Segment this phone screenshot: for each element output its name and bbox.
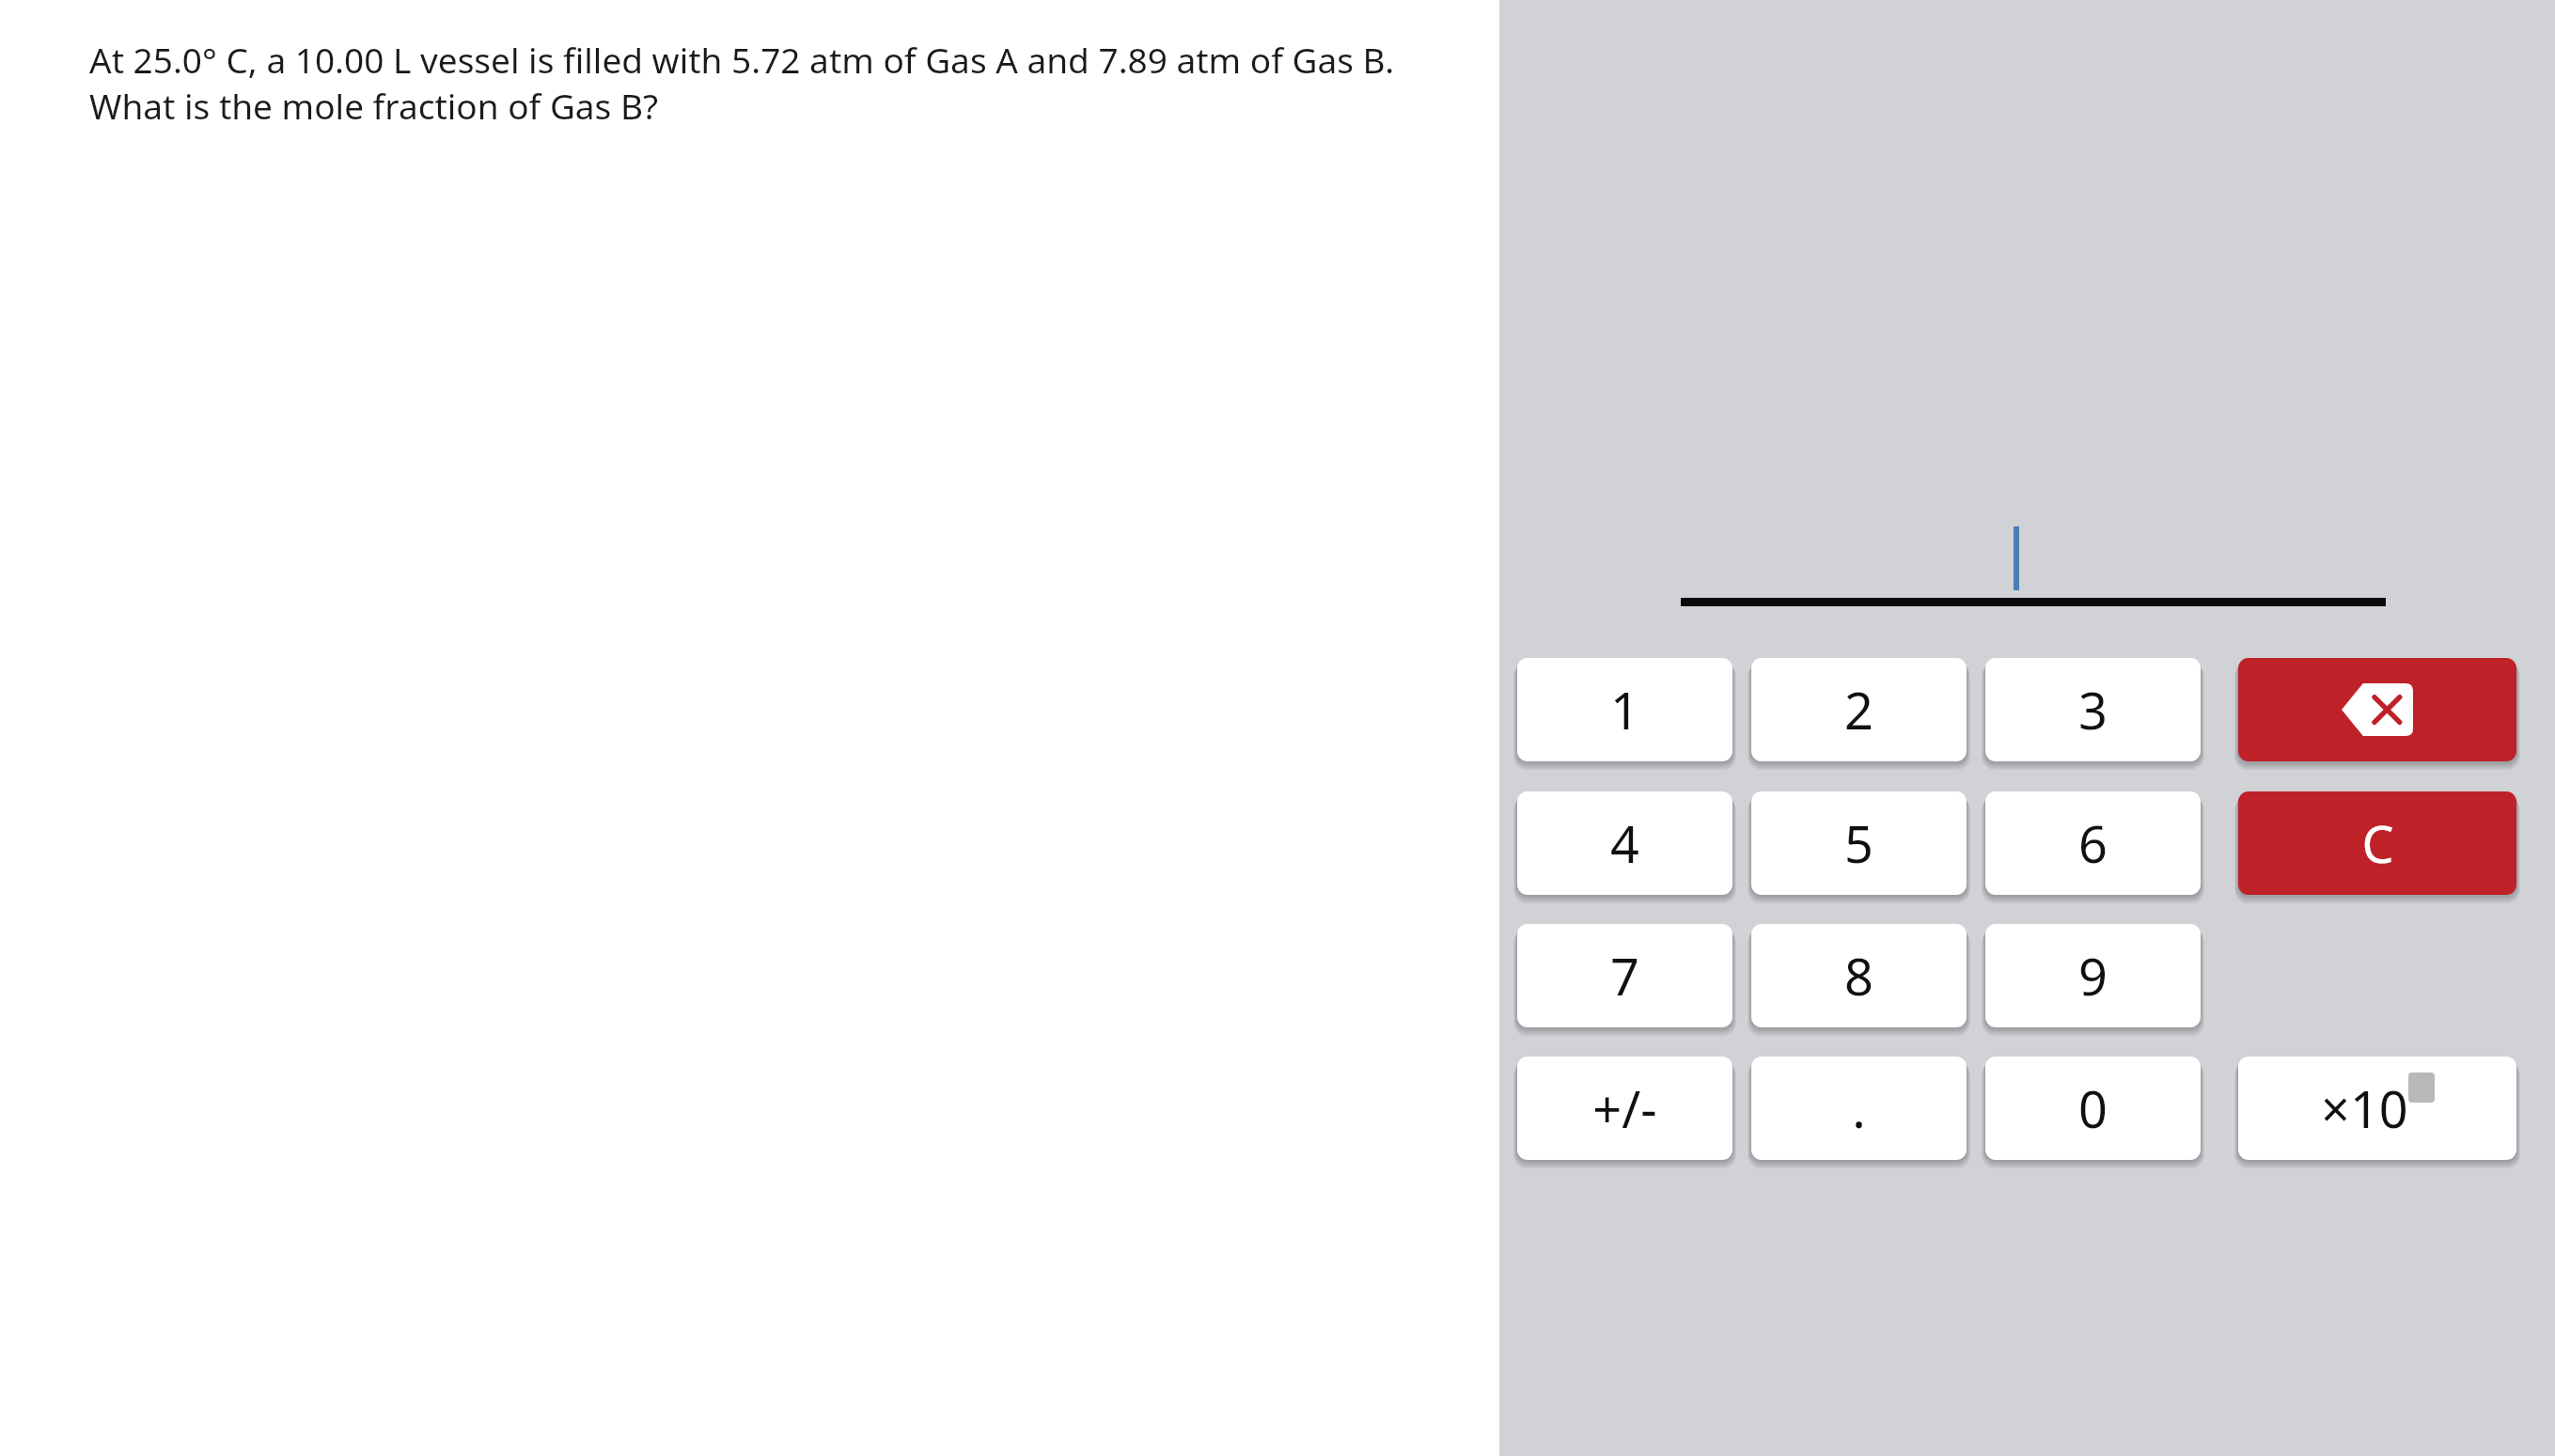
button[interactable]: 3 [1985, 658, 2201, 761]
button[interactable]: 5 [1751, 791, 1967, 895]
staticText: At 25.0° C, a 10.00 L vessel is filled w… [89, 36, 1424, 130]
button[interactable]: . [1751, 1057, 1967, 1160]
button[interactable]: Times ten to the power of [2238, 1057, 2516, 1160]
button[interactable]: 1 [1517, 658, 1732, 761]
staticText: +/- [1592, 1073, 1657, 1143]
button[interactable]: C [2238, 791, 2516, 895]
staticText: ×10 [2321, 1073, 2408, 1143]
button[interactable]: 0 [1985, 1057, 2201, 1160]
button[interactable]: 4 [1517, 791, 1732, 895]
staticText: 1 [1610, 675, 1639, 744]
button[interactable]: 2 [1751, 658, 1967, 761]
staticText: 9 [2078, 941, 2108, 1010]
staticText: 0 [2078, 1073, 2108, 1143]
button[interactable] [2014, 526, 2019, 590]
button[interactable]: 6 [1985, 791, 2201, 895]
staticText: 5 [1844, 808, 1873, 878]
staticText: 7 [1610, 941, 1639, 1010]
staticText: 3 [2078, 675, 2108, 744]
button[interactable]: 7 [1517, 924, 1732, 1027]
button[interactable]: 9 [1985, 924, 2201, 1027]
button[interactable]: +/- [1517, 1057, 1732, 1160]
staticText: 4 [1610, 808, 1639, 878]
button[interactable]: Backspace [2238, 658, 2516, 761]
staticText: 6 [2078, 808, 2108, 878]
staticText: 8 [1844, 941, 1873, 1010]
staticText: 2 [1844, 675, 1873, 744]
staticText: C [2361, 808, 2394, 878]
button[interactable]: 8 [1751, 924, 1967, 1027]
staticText: . [1852, 1073, 1866, 1143]
